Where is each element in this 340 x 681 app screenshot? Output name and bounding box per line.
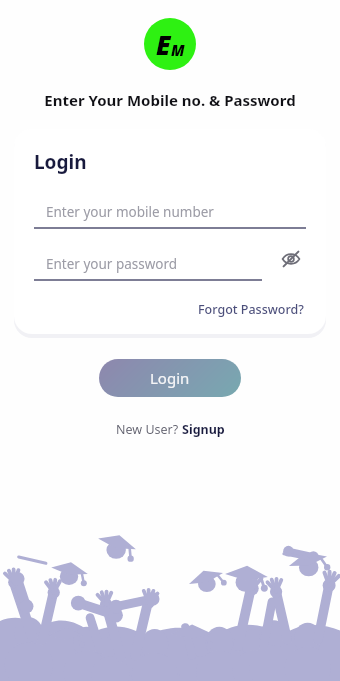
button[interactable]: Show password bbox=[276, 244, 306, 274]
staticText: Signup bbox=[182, 421, 225, 438]
staticText: Login bbox=[34, 149, 87, 175]
staticText: E bbox=[156, 27, 171, 62]
staticText: New User? bbox=[116, 421, 182, 438]
button[interactable]: Enter your password bbox=[34, 249, 262, 279]
staticText: M bbox=[171, 40, 185, 60]
staticText: Login bbox=[150, 368, 190, 388]
button[interactable]: New User? bbox=[112, 419, 229, 440]
staticText: Enter your password bbox=[46, 255, 178, 273]
staticText: Forgot Password? bbox=[198, 301, 304, 318]
staticText: Enter your mobile number bbox=[46, 203, 214, 221]
button[interactable]: Forgot Password? bbox=[196, 299, 306, 320]
staticText: Enter Your Mobile no. & Password bbox=[44, 90, 296, 110]
button[interactable]: Enter your mobile number bbox=[34, 197, 306, 227]
button[interactable]: Login bbox=[99, 359, 241, 397]
